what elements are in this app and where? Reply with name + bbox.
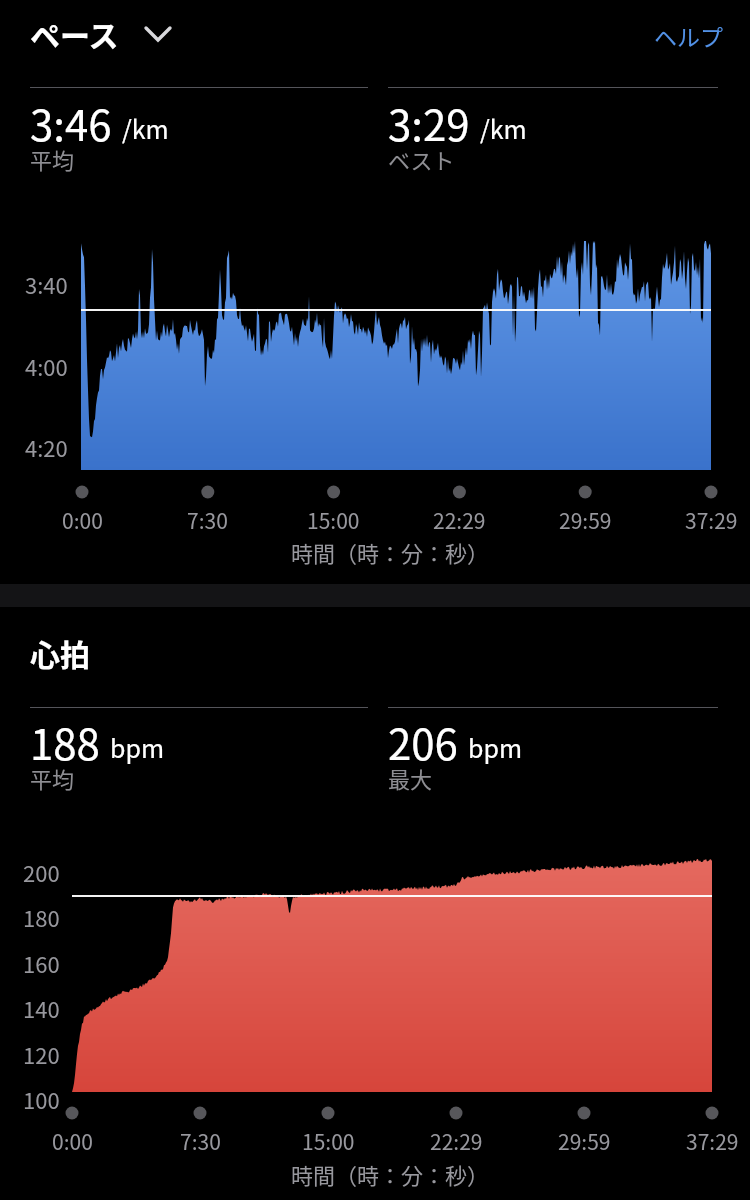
staticText: 心拍 [30, 631, 90, 674]
staticText: 180 [23, 901, 60, 933]
staticText: /km [122, 110, 169, 146]
staticText: bpm [110, 729, 165, 765]
staticText: 140 [23, 992, 60, 1024]
staticText: 160 [23, 947, 60, 979]
staticText: 0:00 [62, 505, 103, 535]
staticText: 3:40 [25, 268, 68, 300]
staticText: /km [480, 110, 527, 146]
staticText: ヘルプ [654, 19, 723, 52]
staticText: 0:00 [52, 1126, 93, 1156]
staticText: ベスト [388, 143, 455, 175]
staticText: 22:29 [430, 1126, 483, 1156]
staticText: 時間（時：分：秒） [291, 536, 490, 568]
staticText: 29:59 [558, 1126, 611, 1156]
staticText: 120 [23, 1038, 60, 1070]
staticText: 22:29 [433, 505, 486, 535]
staticText: 206 [388, 711, 458, 772]
staticText: 平均 [30, 762, 75, 794]
button[interactable]: ヘルプ [654, 19, 723, 52]
staticText: 188 [30, 711, 100, 772]
staticText: 時間（時：分：秒） [291, 1158, 490, 1190]
staticText: 最大 [388, 762, 433, 794]
staticText: 7:30 [180, 1126, 221, 1156]
staticText: 200 [23, 856, 60, 888]
staticText: 15:00 [307, 505, 360, 535]
staticText: 3:29 [388, 92, 470, 153]
staticText: ペース [30, 12, 119, 55]
staticText: 平均 [30, 143, 75, 175]
button[interactable]: ペース [30, 12, 173, 55]
staticText: 3:46 [30, 92, 112, 153]
staticText: 37:29 [686, 1126, 739, 1156]
staticText: bpm [468, 729, 523, 765]
staticText: 100 [23, 1083, 60, 1115]
staticText: 4:00 [25, 350, 68, 382]
staticText: 15:00 [302, 1126, 355, 1156]
staticText: 29:59 [559, 505, 612, 535]
staticText: 4:20 [25, 431, 68, 463]
staticText: 37:29 [685, 505, 738, 535]
staticText: 7:30 [187, 505, 228, 535]
